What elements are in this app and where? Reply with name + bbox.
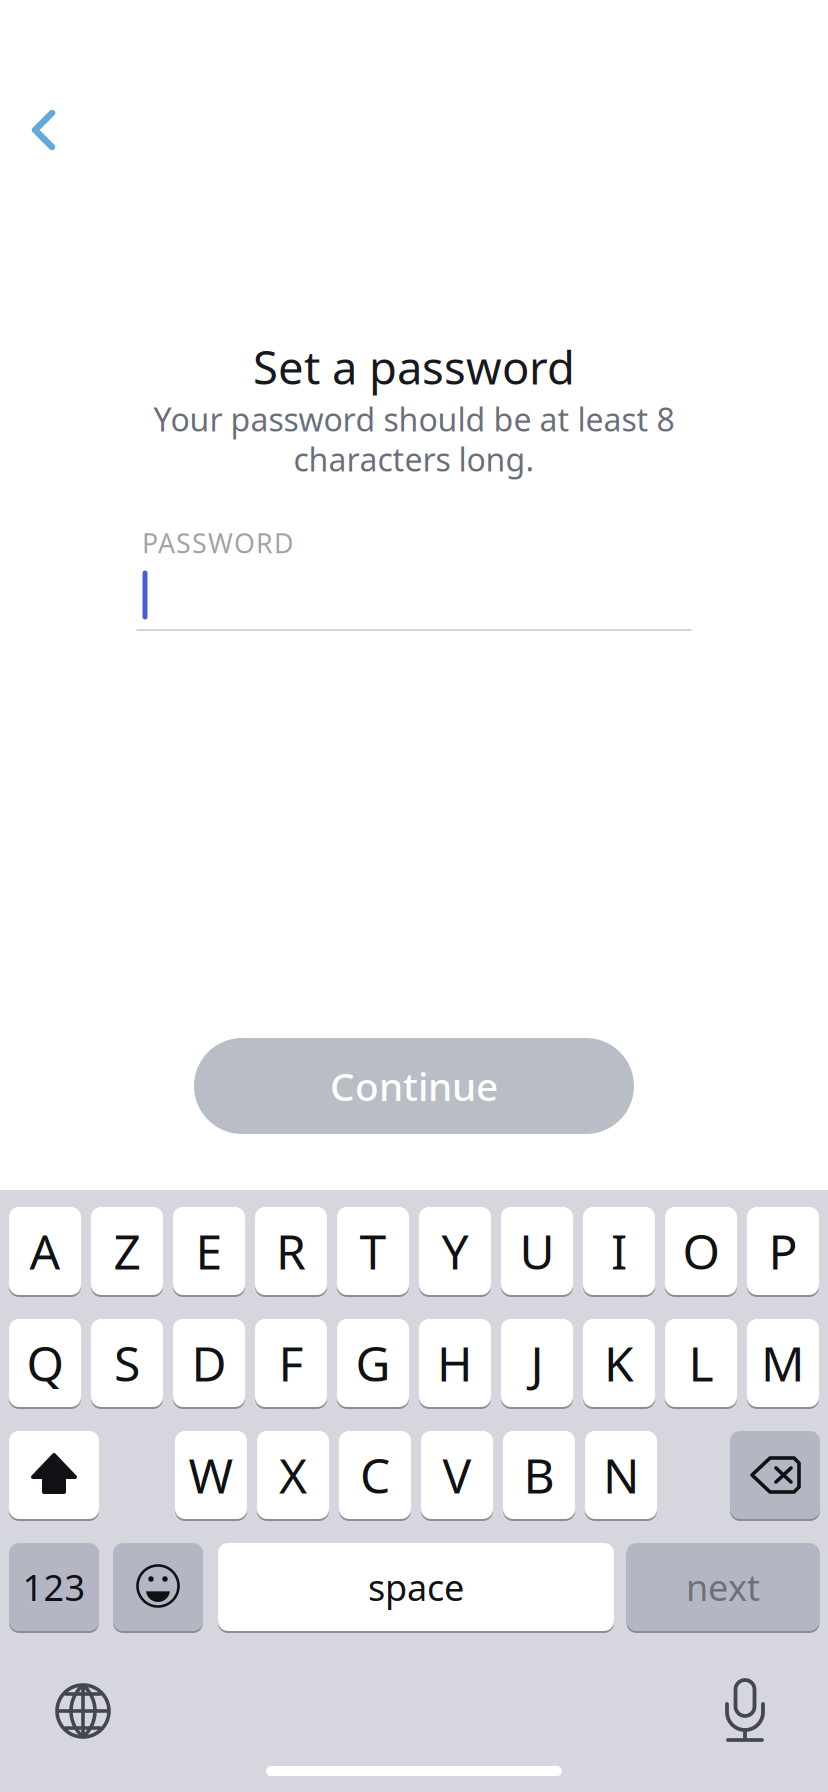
staticText: L [688,1331,713,1395]
button[interactable]: space [218,1541,614,1633]
staticText: Z [113,1219,140,1283]
staticText: Y [441,1219,468,1283]
staticText: P [768,1219,797,1283]
staticText: U [519,1219,554,1283]
staticText: B [523,1443,554,1507]
button[interactable]: E [173,1205,245,1297]
button[interactable]: 123 [9,1541,99,1633]
staticText: W [188,1443,233,1507]
staticText: T [359,1219,386,1283]
staticText: N [603,1443,639,1507]
staticText: X [279,1443,307,1507]
staticText: space [368,1563,464,1611]
button[interactable]: next [626,1541,819,1633]
staticText: E [195,1219,222,1283]
staticText: Set a password [253,337,575,397]
button[interactable]: F [255,1317,327,1409]
button[interactable]: Emoji [113,1541,203,1633]
button[interactable]: Q [9,1317,81,1409]
button[interactable]: N [585,1429,657,1521]
staticText: S [114,1331,140,1395]
staticText: H [437,1331,473,1395]
button[interactable]: X [257,1429,329,1521]
button[interactable]: K [583,1317,655,1409]
button[interactable]: T [337,1205,409,1297]
staticText: G [355,1331,390,1395]
staticText: characters long. [293,438,534,480]
button[interactable]: Back [0,86,88,174]
staticText: K [604,1331,634,1395]
button[interactable]: Dictate [695,1661,795,1761]
staticText: F [278,1331,303,1395]
staticText: Continue [330,1060,498,1112]
button[interactable]: Continue [194,1038,634,1134]
button[interactable]: R [255,1205,327,1297]
button[interactable]: A [9,1205,81,1297]
button[interactable]: H [419,1317,491,1409]
button[interactable]: L [665,1317,737,1409]
staticText: C [360,1443,390,1507]
staticText: M [761,1331,805,1395]
button[interactable]: Next keyboard [33,1661,133,1761]
button[interactable]: S [91,1317,163,1409]
button[interactable]: C [339,1429,411,1521]
staticText: Your password should be at least 8 [153,398,674,440]
button[interactable]: V [421,1429,493,1521]
button[interactable]: O [665,1205,737,1297]
staticText: I [611,1219,627,1283]
button[interactable]: Z [91,1205,163,1297]
staticText: Q [26,1331,63,1395]
button[interactable]: Y [419,1205,491,1297]
button[interactable]: J [501,1317,573,1409]
staticText: D [191,1331,226,1395]
staticText: A [29,1219,60,1283]
staticText: 123 [22,1563,85,1611]
staticText: J [530,1331,543,1395]
button[interactable]: U [501,1205,573,1297]
staticText: PASSWORD [142,525,293,561]
button[interactable]: M [747,1317,819,1409]
button[interactable]: Shift [9,1429,99,1521]
staticText: R [276,1219,306,1283]
button[interactable]: I [583,1205,655,1297]
staticText: next [686,1563,760,1611]
button[interactable]: B [503,1429,575,1521]
staticText: O [682,1219,719,1283]
button[interactable]: G [337,1317,409,1409]
button[interactable]: D [173,1317,245,1409]
button[interactable]: Delete [730,1429,820,1521]
staticText: V [442,1443,471,1507]
button[interactable]: W [175,1429,247,1521]
button[interactable]: P [747,1205,819,1297]
